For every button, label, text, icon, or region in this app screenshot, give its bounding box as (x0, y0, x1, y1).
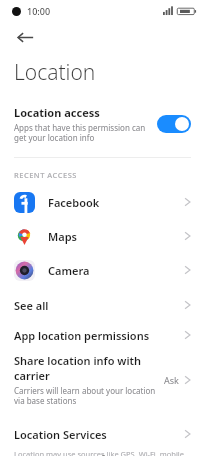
staticText: See all (14, 298, 49, 313)
staticText: Location Services (14, 427, 107, 442)
button[interactable]: Facebook (0, 188, 205, 216)
button[interactable]: Maps (0, 222, 205, 250)
staticText: App location permissions (14, 328, 150, 343)
staticText: Camera (48, 263, 90, 278)
button[interactable]: Location access (0, 103, 205, 145)
button[interactable]: App location permissions (0, 320, 205, 350)
staticText: Location may use sources like GPS, Wi-Fi… (14, 449, 191, 456)
staticText: RECENT ACCESS (14, 170, 77, 180)
staticText: Maps (48, 229, 77, 244)
staticText: Location access (14, 105, 100, 120)
button[interactable]: Location Services (0, 419, 205, 449)
staticText: 10:00 (27, 5, 51, 17)
staticText: Share location info with carrier (14, 353, 160, 383)
button[interactable]: Camera (0, 256, 205, 284)
staticText: Carriers will learn about your location … (14, 385, 160, 406)
button[interactable]: Share location info with carrier (0, 350, 205, 409)
staticText: Ask (164, 374, 179, 386)
button[interactable]: Back (10, 22, 40, 52)
staticText: Apps that have this permission can get y… (14, 122, 149, 143)
staticText: Location (14, 58, 96, 87)
staticText: Facebook (48, 195, 100, 210)
button[interactable]: Location access toggle (157, 115, 191, 133)
button[interactable]: See all (0, 290, 205, 320)
